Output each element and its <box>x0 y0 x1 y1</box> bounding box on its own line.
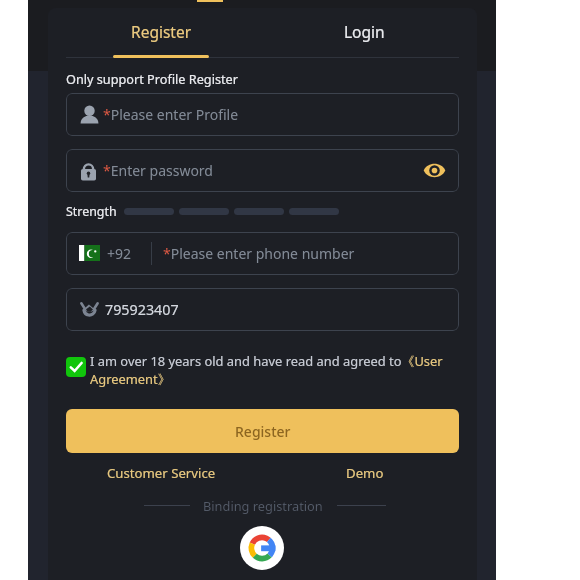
staticText: *Please enter phone number <box>163 244 355 263</box>
staticText: Login <box>344 21 385 42</box>
button[interactable]: Demo <box>263 461 466 484</box>
button[interactable]: Phone number <box>66 232 459 275</box>
button[interactable]: Login <box>263 8 466 55</box>
button[interactable]: I am over 18 years old and have read and… <box>90 352 454 388</box>
button[interactable]: Invite code <box>66 288 459 331</box>
staticText: Register <box>131 21 192 42</box>
staticText: +92 <box>107 244 132 263</box>
staticText: Register <box>235 422 291 441</box>
staticText: Customer Service <box>107 464 216 482</box>
staticText: Only support Profile Register <box>66 70 238 87</box>
button[interactable]: Register <box>60 8 263 55</box>
button[interactable]: Customer Service <box>60 461 263 484</box>
staticText: *Please enter Profile <box>103 105 239 124</box>
staticText: *Enter password <box>103 161 213 180</box>
staticText: Binding registration <box>203 497 323 514</box>
staticText: Strength <box>66 203 117 220</box>
staticText: Demo <box>346 464 384 482</box>
staticText: I am over 18 years old and have read and… <box>90 352 454 388</box>
button[interactable]: Profile <box>66 93 459 136</box>
button[interactable]: Register <box>66 409 459 453</box>
button[interactable]: Sign in with Google <box>240 526 284 570</box>
button[interactable]: Agree to the user agreement <box>66 357 86 377</box>
staticText: 795923407 <box>105 300 179 319</box>
button[interactable]: Show password <box>423 162 446 179</box>
button[interactable]: Password <box>66 149 459 192</box>
